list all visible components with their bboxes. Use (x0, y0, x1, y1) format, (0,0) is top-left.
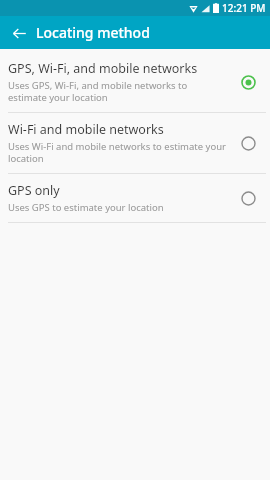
button[interactable]: GPS, Wi-Fi, and mobile networks (0, 52, 270, 112)
staticText: Uses Wi-Fi and mobile networks to estima… (8, 140, 228, 165)
staticText: GPS, Wi-Fi, and mobile networks (8, 60, 198, 77)
button[interactable]: Wi-Fi and mobile networks (0, 113, 270, 173)
staticText: GPS only (8, 182, 60, 199)
staticText: 12:21 PM (222, 1, 266, 15)
staticText: Locating method (36, 23, 150, 42)
button[interactable]: Navigate up (6, 20, 32, 46)
staticText: Uses GPS to estimate your location (8, 201, 164, 214)
staticText: Uses GPS, Wi-Fi, and mobile networks to … (8, 79, 228, 104)
button[interactable]: GPS only (0, 174, 270, 222)
staticText: Wi-Fi and mobile networks (8, 121, 164, 138)
